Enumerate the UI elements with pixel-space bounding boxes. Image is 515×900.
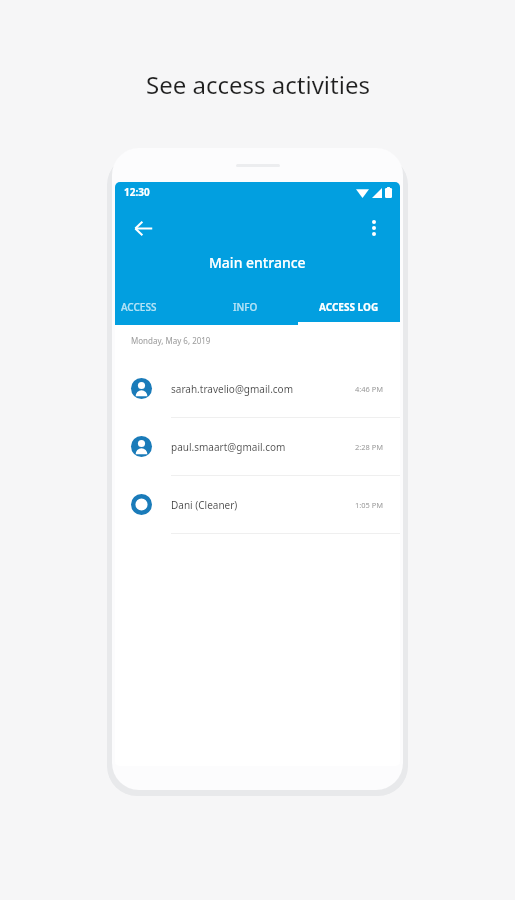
staticText: ACCESS [121,300,157,314]
staticText: 1:05 PM [355,500,384,510]
button[interactable]: ACCESS [115,288,193,325]
staticText: Main entrance [209,253,306,272]
button[interactable]: More options [353,207,395,249]
staticText: See access activities [146,68,370,101]
staticText: ACCESS LOG [319,300,379,314]
staticText: 2:28 PM [355,442,384,452]
staticText: sarah.travelio@gmail.com [171,382,294,396]
button[interactable]: Back [122,207,164,249]
button[interactable]: INFO [198,288,293,325]
button[interactable]: paul.smaart@gmail.com [115,418,400,475]
button[interactable]: ACCESS LOG [298,288,400,325]
button[interactable]: sarah.travelio@gmail.com [115,360,400,417]
staticText: paul.smaart@gmail.com [171,440,286,454]
button[interactable]: Dani (Cleaner) [115,476,400,533]
staticText: 12:30 [124,185,150,199]
staticText: INFO [233,300,258,314]
staticText: Monday, May 6, 2019 [131,335,211,346]
staticText: 4:46 PM [355,384,384,394]
staticText: Dani (Cleaner) [171,498,238,512]
